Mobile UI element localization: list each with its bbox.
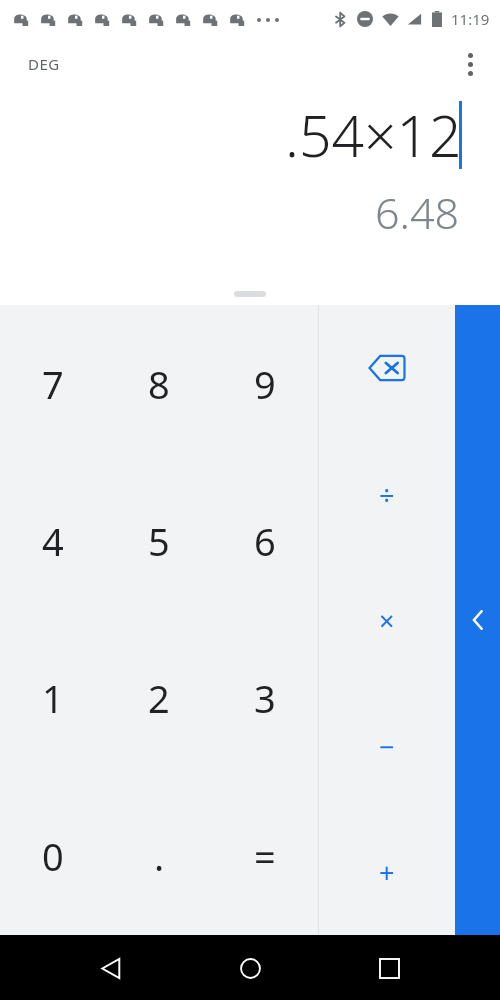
button[interactable]: + [319,809,455,935]
staticText: DEG [28,54,60,74]
button[interactable]: 1 [0,619,106,777]
staticText: .54×12 [285,96,462,174]
staticText: ÷ [379,476,395,513]
button[interactable]: = [212,777,318,935]
button[interactable] [234,291,266,297]
button[interactable]: Recents [361,940,417,996]
button[interactable]: Back [83,940,139,996]
staticText: . [154,830,165,882]
button[interactable]: 0 [0,777,106,935]
button[interactable]: More options [446,40,494,88]
button[interactable]: Backspace [319,305,455,431]
button[interactable]: − [319,683,455,809]
staticText: 1 [42,672,64,724]
staticText: 7 [42,358,64,410]
button[interactable]: DEG [18,48,70,80]
staticText: 5 [148,515,170,567]
button[interactable]: ÷ [319,431,455,557]
staticText: 3 [254,672,276,724]
button[interactable]: . [106,777,212,935]
button[interactable]: 4 [0,462,106,619]
button[interactable]: 3 [212,619,318,777]
staticText: 8 [148,358,170,410]
staticText: − [379,728,395,765]
staticText: 6 [254,515,276,567]
button[interactable]: 8 [106,305,212,462]
staticText: + [379,854,395,891]
button[interactable]: 2 [106,619,212,777]
button[interactable]: 7 [0,305,106,462]
staticText: 6.48 [375,183,460,242]
button[interactable]: 5 [106,462,212,619]
staticText: 11:19 [451,9,490,29]
button[interactable]: 6 [212,462,318,619]
staticText: × [379,602,395,639]
button[interactable]: × [319,557,455,683]
staticText: 4 [42,515,64,567]
button[interactable]: 9 [212,305,318,462]
staticText: 0 [42,830,64,882]
staticText: = [254,830,276,882]
button[interactable]: Home [222,940,278,996]
staticText: 2 [148,672,170,724]
button[interactable]: Show advanced pad [455,305,500,935]
staticText: 9 [254,358,276,410]
